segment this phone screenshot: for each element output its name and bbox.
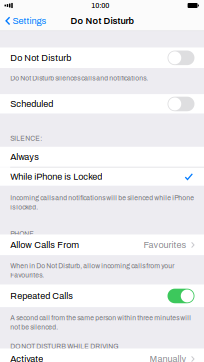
staticText: DO NOT DISTURB WHILE DRIVING [10, 343, 118, 350]
staticText: Favourites [144, 240, 187, 250]
button[interactable]: Repeated Calls [0, 284, 204, 307]
button[interactable]: While iPhone is Locked [0, 167, 204, 186]
staticText: A second call from the same person withi… [10, 313, 191, 332]
staticText: Manually [150, 354, 187, 362]
button[interactable]: Do Not Disturb [0, 47, 204, 68]
button[interactable]: Allow Calls From [0, 234, 204, 255]
button[interactable]: Activate [0, 348, 204, 362]
staticText: Scheduled [10, 99, 53, 109]
staticText: Repeated Calls [10, 291, 73, 301]
staticText: PHONE [10, 230, 34, 238]
staticText: 10:00 [91, 2, 109, 9]
staticText: Do Not Disturb [10, 53, 71, 63]
staticText: Do Not Disturb silences calls and notifi… [10, 74, 148, 83]
button[interactable]: Settings [0, 11, 52, 31]
staticText: Do Not Disturb [70, 16, 133, 26]
staticText: Incoming calls and notifications will be… [10, 193, 194, 212]
staticText: Activate [10, 354, 43, 362]
button[interactable]: Scheduled [0, 94, 204, 114]
staticText: When in Do Not Disturb, allow incoming c… [10, 261, 174, 280]
staticText: Always [10, 152, 39, 162]
staticText: Settings [13, 16, 47, 26]
staticText: Allow Calls From [10, 240, 79, 250]
staticText: While iPhone is Locked [10, 172, 102, 182]
staticText: SILENCE: [10, 135, 42, 142]
button[interactable]: Always [0, 147, 204, 167]
